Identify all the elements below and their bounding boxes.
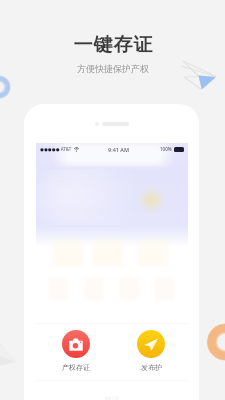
staticText: 产权存证 [62,363,90,372]
staticText: 一键存证 [73,33,153,57]
other: 发布护 [137,330,165,358]
staticText: 100% [160,146,172,152]
staticText: 9:41 AM [108,146,130,153]
button[interactable]: 发布护 [137,330,165,372]
staticText: 取消 [105,395,119,400]
button[interactable]: 产权存证 [62,330,90,372]
staticText: ●●●●● AT&T [40,146,72,152]
staticText: 发布护 [141,363,162,372]
other: 产权存证 [62,330,90,358]
staticText: 方便快捷保护产权 [77,63,149,74]
